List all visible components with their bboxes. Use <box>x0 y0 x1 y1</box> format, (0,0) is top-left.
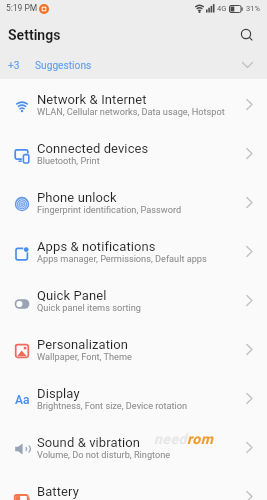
staticText: Settings <box>8 27 61 43</box>
staticText: Suggestions <box>35 60 92 72</box>
staticText: Aa <box>15 393 30 407</box>
staticText: Bluetooth, Print <box>37 155 100 166</box>
staticText: Personalization <box>37 337 129 352</box>
staticText: Apps manager, Permissions, Default apps <box>37 253 207 264</box>
staticText: Apps & notifications <box>37 239 156 254</box>
staticText: Quick panel items sorting <box>37 302 141 313</box>
staticText: WLAN, Cellular networks, Data usage, Hot… <box>37 106 225 117</box>
staticText: Fingerprint identification, Password <box>37 204 182 215</box>
staticText: rom <box>187 431 214 447</box>
staticText: Sound & vibration <box>37 435 141 450</box>
staticText: Quick Panel <box>37 288 107 303</box>
staticText: Battery <box>37 484 79 499</box>
staticText: 4G <box>217 4 227 13</box>
staticText: Network & Internet <box>37 92 147 107</box>
staticText: 31% <box>246 4 260 13</box>
staticText: Wallpaper, Font, Theme <box>37 351 132 362</box>
staticText: Volume, Do not disturb, Ringtone <box>37 449 171 460</box>
staticText: Display <box>37 386 80 401</box>
staticText: 5:19 PM <box>6 3 38 13</box>
staticText: +3 <box>8 60 20 72</box>
staticText: Phone unlock <box>37 190 117 205</box>
staticText: Brightness, Font size, Device rotation <box>37 400 188 411</box>
staticText: Connected devices <box>37 141 149 156</box>
staticText: need <box>154 431 187 447</box>
